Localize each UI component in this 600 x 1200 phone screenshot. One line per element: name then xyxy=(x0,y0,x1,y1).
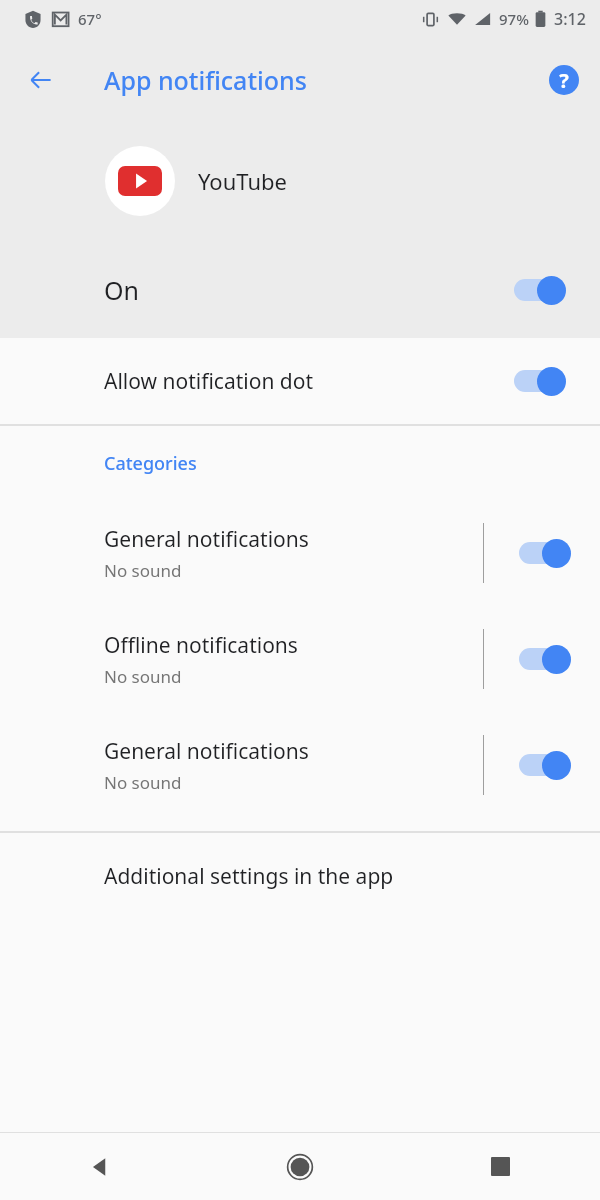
button[interactable]: On xyxy=(0,241,600,338)
staticText: No sound xyxy=(104,665,182,688)
button[interactable]: Recents xyxy=(400,1133,600,1200)
button[interactable]: Offline notifications xyxy=(0,606,600,712)
staticText: 97% xyxy=(499,9,529,29)
staticText: No sound xyxy=(104,559,182,582)
button[interactable]: YouTube xyxy=(0,121,600,241)
staticText: No sound xyxy=(104,771,182,794)
button[interactable]: Help xyxy=(542,58,586,102)
staticText: General notifications xyxy=(104,737,309,766)
staticText: Allow notification dot xyxy=(104,367,314,396)
staticText: YouTube xyxy=(198,166,287,196)
button[interactable]: Back xyxy=(17,56,65,104)
button[interactable]: Toggle General notifications xyxy=(484,500,600,606)
staticText: General notifications xyxy=(104,525,309,554)
button[interactable]: Allow notification dot xyxy=(0,338,600,424)
button[interactable]: Additional settings in the app xyxy=(0,833,600,919)
button[interactable]: Back xyxy=(0,1133,200,1200)
button[interactable]: Toggle General notifications xyxy=(484,712,600,818)
button[interactable]: Toggle Offline notifications xyxy=(484,606,600,712)
staticText: 3:12 xyxy=(554,8,586,30)
button[interactable]: Home xyxy=(200,1133,400,1200)
staticText: ? xyxy=(559,67,569,94)
staticText: 67° xyxy=(78,9,102,29)
button[interactable]: General notifications xyxy=(0,500,600,606)
staticText: Categories xyxy=(104,451,197,476)
staticText: Additional settings in the app xyxy=(104,862,394,891)
staticText: Offline notifications xyxy=(104,631,298,660)
staticText: On xyxy=(104,273,139,307)
button[interactable]: General notifications xyxy=(0,712,600,818)
staticText: App notifications xyxy=(104,63,307,97)
